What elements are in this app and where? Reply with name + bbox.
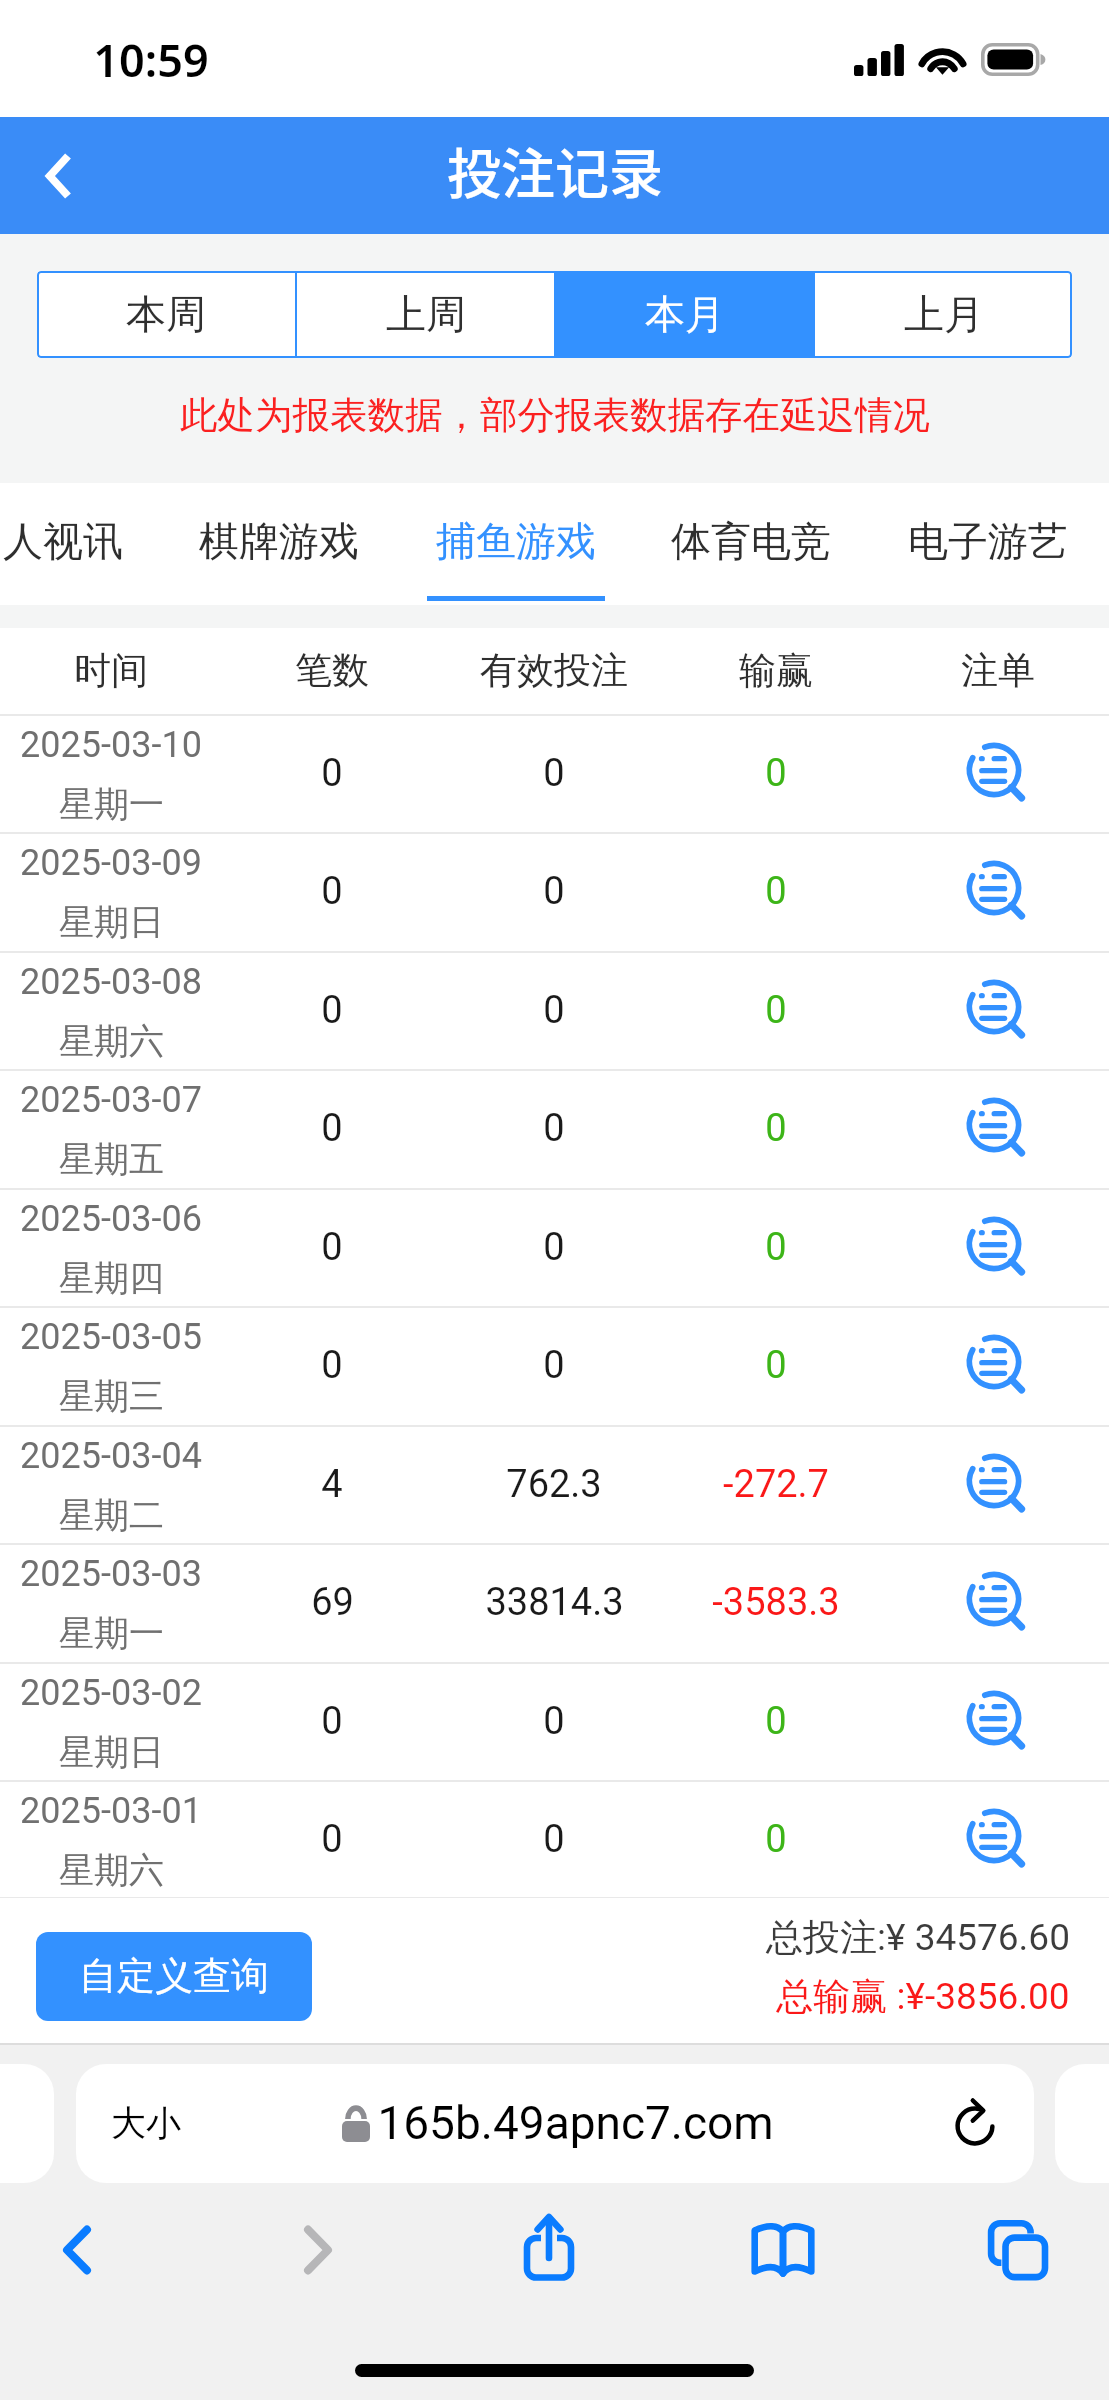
staticText: 上周 [386, 289, 466, 339]
staticText: 0 [765, 1699, 787, 1744]
staticText: 0 [321, 751, 343, 796]
staticText: 此处为报表数据，部分报表数据存在延迟情况 [180, 392, 930, 439]
button[interactable]: View bet details [887, 1188, 1109, 1306]
staticText: 棋牌游戏 [199, 516, 359, 566]
button[interactable]: 2025-03-03 [0, 1543, 1109, 1661]
button[interactable]: View bet details [887, 1662, 1109, 1780]
button[interactable]: 棋牌游戏 [159, 483, 399, 605]
staticText: 体育电竞 [671, 516, 831, 566]
staticText: 星期一 [59, 782, 164, 826]
staticText: 0 [765, 751, 787, 796]
staticText: 注单 [961, 647, 1035, 694]
button[interactable]: 人视讯 [0, 483, 183, 605]
staticText: 0 [321, 1343, 343, 1388]
button[interactable]: Bookmarks [733, 2200, 833, 2300]
button[interactable]: 上月 [815, 271, 1072, 358]
staticText: 0 [765, 988, 787, 1033]
staticText: -272.7 [723, 1462, 829, 1507]
staticText: 0 [765, 1343, 787, 1388]
staticText: 4 [321, 1462, 343, 1507]
button[interactable]: 电子游艺 [868, 483, 1108, 605]
staticText: 有效投注 [480, 647, 628, 694]
staticText: 2025-03-07 [20, 1079, 202, 1121]
staticText: 0 [765, 1817, 787, 1862]
staticText: 762.3 [506, 1462, 602, 1507]
staticText: 0 [765, 1225, 787, 1270]
staticText: 星期三 [59, 1374, 164, 1418]
button[interactable]: Tabs [968, 2200, 1068, 2300]
staticText: 2025-03-09 [20, 842, 202, 884]
button[interactable]: 2025-03-07 [0, 1069, 1109, 1187]
staticText: 捕鱼游戏 [436, 516, 596, 566]
staticText: 星期四 [59, 1256, 164, 1300]
button[interactable]: View bet details [887, 1306, 1109, 1424]
button[interactable]: View bet details [887, 1069, 1109, 1187]
button[interactable]: View bet details [887, 1543, 1109, 1661]
button[interactable]: 大小 [76, 2064, 1034, 2183]
button[interactable]: 体育电竞 [631, 483, 871, 605]
staticText: 0 [765, 1106, 787, 1151]
button[interactable]: Back [27, 2200, 127, 2300]
staticText: 0 [321, 1817, 343, 1862]
button[interactable]: Reload [937, 2086, 1013, 2162]
staticText: 0 [543, 1699, 565, 1744]
button[interactable]: 上周 [297, 271, 554, 358]
button[interactable]: 2025-03-02 [0, 1662, 1109, 1780]
staticText: 69 [311, 1580, 354, 1625]
button[interactable]: 2025-03-06 [0, 1188, 1109, 1306]
staticText: 0 [543, 869, 565, 914]
button[interactable]: 本月 [556, 271, 813, 358]
staticText: 0 [543, 1225, 565, 1270]
button[interactable]: Share [499, 2200, 599, 2300]
button[interactable]: View bet details [887, 1780, 1109, 1898]
button[interactable]: View bet details [887, 1425, 1109, 1543]
staticText: 输赢 [739, 647, 813, 694]
staticText: 自定义查询 [79, 1952, 269, 2000]
button[interactable]: 捕鱼游戏 [396, 483, 636, 605]
button[interactable]: 2025-03-10 [0, 714, 1109, 832]
staticText: 2025-03-06 [20, 1198, 202, 1240]
staticText: 0 [543, 988, 565, 1033]
staticText: 星期二 [59, 1493, 164, 1537]
staticText: 0 [543, 1817, 565, 1862]
staticText: 0 [321, 1106, 343, 1151]
button[interactable]: 2025-03-09 [0, 832, 1109, 950]
staticText: 2025-03-03 [20, 1553, 202, 1595]
staticText: 2025-03-01 [20, 1790, 202, 1832]
button[interactable]: 2025-03-01 [0, 1780, 1109, 1898]
button[interactable]: 自定义查询 [36, 1932, 312, 2021]
staticText: 大小 [111, 2101, 181, 2145]
button[interactable]: View bet details [887, 714, 1109, 832]
staticText: 0 [543, 1343, 565, 1388]
button[interactable]: 2025-03-08 [0, 951, 1109, 1069]
button[interactable]: 2025-03-04 [0, 1425, 1109, 1543]
button[interactable]: 2025-03-05 [0, 1306, 1109, 1424]
staticText: 本月 [645, 289, 725, 339]
button[interactable]: 本周 [37, 271, 295, 358]
staticText: 星期日 [59, 1730, 164, 1774]
staticText: 星期六 [59, 1019, 164, 1063]
staticText: 星期一 [59, 1611, 164, 1655]
button[interactable]: View bet details [887, 951, 1109, 1069]
staticText: 165b.49apnc7.com [377, 2096, 774, 2150]
staticText: 2025-03-10 [20, 724, 202, 766]
staticText: 时间 [74, 647, 148, 694]
staticText: 电子游艺 [908, 516, 1068, 566]
staticText: 0 [321, 1699, 343, 1744]
staticText: 星期五 [59, 1137, 164, 1181]
button[interactable]: Back [0, 117, 116, 234]
staticText: 上月 [904, 289, 984, 339]
staticText: 2025-03-05 [20, 1316, 202, 1358]
button[interactable]: View bet details [887, 832, 1109, 950]
button[interactable]: Forward [268, 2200, 368, 2300]
staticText: 0 [321, 1225, 343, 1270]
staticText: 投注记录 [447, 131, 663, 209]
staticText: 10:59 [93, 29, 209, 90]
staticText: 星期六 [59, 1848, 164, 1892]
staticText: -3583.3 [712, 1580, 840, 1625]
staticText: 2025-03-02 [20, 1672, 202, 1714]
staticText: 2025-03-08 [20, 961, 202, 1003]
staticText: 0 [543, 751, 565, 796]
staticText: 笔数 [295, 647, 369, 694]
staticText: 0 [321, 869, 343, 914]
